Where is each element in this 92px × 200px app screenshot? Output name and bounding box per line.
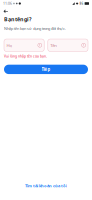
staticText: Vui lòng nhập tên của bạn.: [4, 54, 47, 58]
staticText: Tiếp: [41, 66, 50, 72]
staticText: Tìm tài khoản của tôi: [25, 183, 67, 188]
staticText: Nhập tên bạn sử dụng trong đời thực.: [4, 26, 66, 31]
staticText: Bạn tên gì?: [4, 16, 32, 23]
staticText: 86: [79, 1, 83, 5]
staticText: Tên: [50, 42, 57, 48]
button[interactable]: Tìm tài khoản của tôi: [22, 181, 69, 191]
staticText: Họ: [6, 42, 12, 48]
button[interactable]: Back: [0, 7, 11, 16]
button[interactable]: Tiếp: [4, 65, 88, 74]
staticText: 11:06: [3, 1, 12, 6]
